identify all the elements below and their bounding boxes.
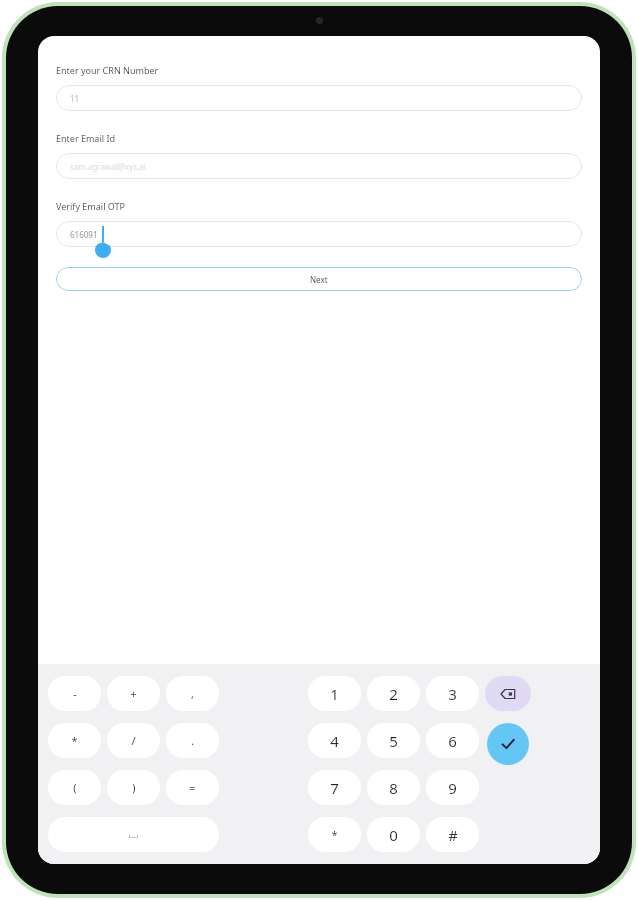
- staticText: 1: [330, 684, 339, 704]
- staticText: (: [73, 780, 77, 795]
- button[interactable]: ): [107, 770, 160, 805]
- button[interactable]: /: [107, 723, 160, 758]
- button[interactable]: 9: [426, 770, 479, 805]
- button[interactable]: 616091: [56, 221, 582, 247]
- button[interactable]: 11: [56, 85, 582, 111]
- button[interactable]: 2: [367, 676, 420, 711]
- button[interactable]: 1: [308, 676, 361, 711]
- staticText: -: [73, 686, 77, 701]
- button[interactable]: 0: [367, 817, 420, 852]
- staticText: /: [131, 733, 136, 748]
- staticText: =: [189, 780, 196, 795]
- button[interactable]: *: [48, 723, 101, 758]
- button[interactable]: sam.agrawal@xyz.ai: [56, 153, 582, 179]
- staticText: Verify Email OTP: [56, 200, 126, 212]
- staticText: 9: [448, 778, 457, 798]
- staticText: Next: [310, 274, 328, 285]
- button[interactable]: 5: [367, 723, 420, 758]
- button[interactable]: ⌴: [48, 817, 219, 852]
- staticText: Enter Email Id: [56, 132, 115, 144]
- staticText: 0: [389, 825, 398, 845]
- staticText: 2: [389, 684, 398, 704]
- button[interactable]: 4: [308, 723, 361, 758]
- button[interactable]: -: [48, 676, 101, 711]
- staticText: ): [132, 780, 136, 795]
- staticText: .: [191, 733, 194, 748]
- button[interactable]: (: [48, 770, 101, 805]
- button[interactable]: #: [426, 817, 479, 852]
- staticText: Enter your CRN Number: [56, 64, 159, 76]
- button[interactable]: Confirm: [487, 723, 529, 765]
- staticText: ⌴: [129, 829, 138, 840]
- staticText: 7: [330, 778, 339, 798]
- staticText: ,: [191, 686, 194, 701]
- button[interactable]: Next: [56, 267, 582, 291]
- staticText: 11: [70, 93, 80, 104]
- button[interactable]: +: [107, 676, 160, 711]
- button[interactable]: 8: [367, 770, 420, 805]
- staticText: sam.agrawal@xyz.ai: [70, 161, 146, 172]
- staticText: 616091: [70, 229, 98, 240]
- staticText: *: [71, 733, 78, 748]
- button[interactable]: 3: [426, 676, 479, 711]
- staticText: *: [331, 827, 338, 842]
- staticText: +: [130, 686, 137, 701]
- button[interactable]: 6: [426, 723, 479, 758]
- staticText: 3: [448, 684, 457, 704]
- button[interactable]: =: [166, 770, 219, 805]
- button[interactable]: Backspace: [485, 676, 531, 711]
- staticText: 4: [330, 731, 339, 751]
- button[interactable]: 7: [308, 770, 361, 805]
- staticText: #: [448, 825, 458, 845]
- button[interactable]: ,: [166, 676, 219, 711]
- button[interactable]: *: [308, 817, 361, 852]
- staticText: 5: [389, 731, 398, 751]
- staticText: 6: [448, 731, 457, 751]
- staticText: 8: [389, 778, 398, 798]
- button[interactable]: .: [166, 723, 219, 758]
